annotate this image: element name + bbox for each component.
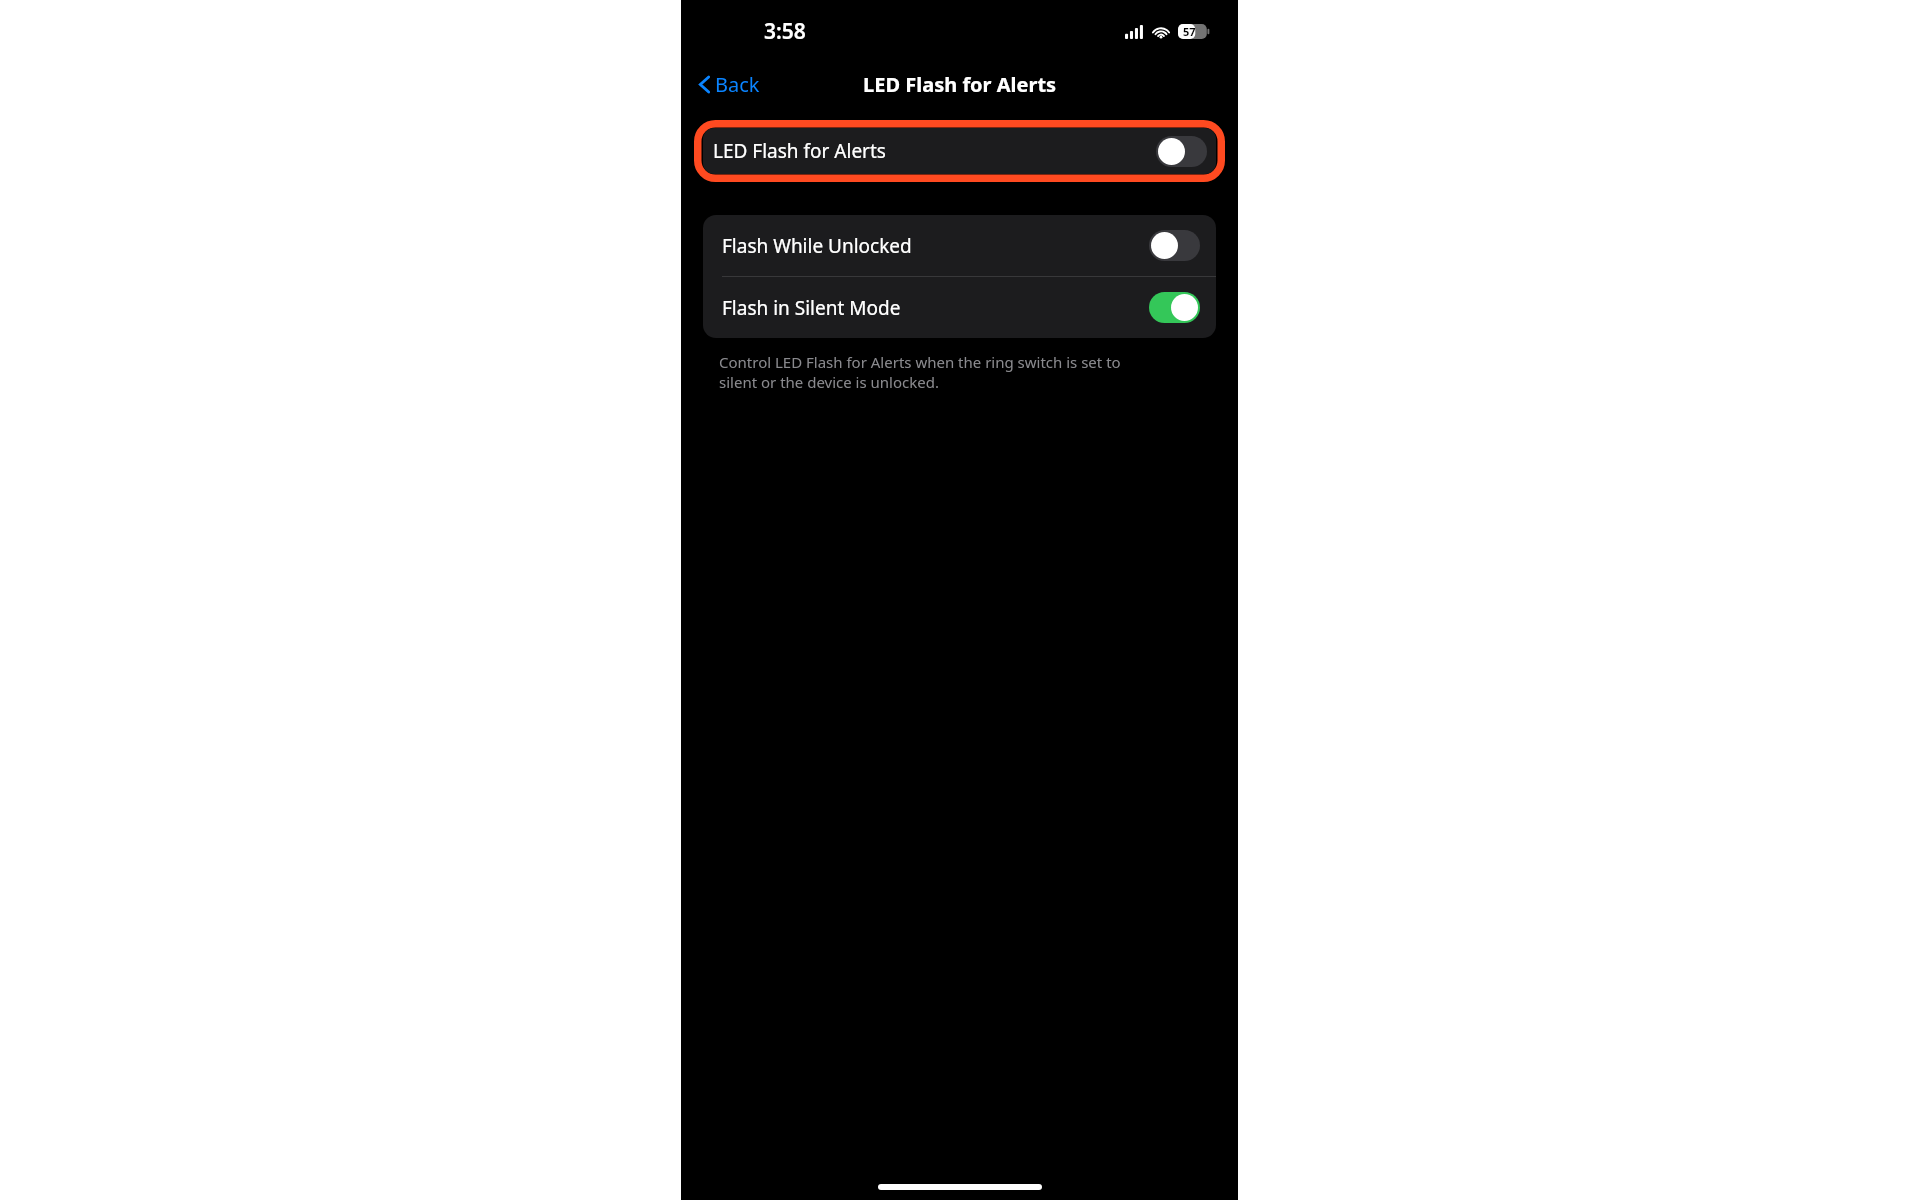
button[interactable]: On: [1149, 292, 1200, 323]
staticText: Flash While Unlocked: [722, 233, 912, 259]
button[interactable]: Flash While Unlocked: [703, 215, 1216, 276]
staticText: LED Flash for Alerts: [863, 71, 1057, 98]
button[interactable]: Back: [693, 67, 766, 102]
staticText: 57: [1183, 24, 1196, 39]
staticText: Control LED Flash for Alerts when the ri…: [719, 352, 1121, 372]
staticText: LED Flash for Alerts: [713, 138, 886, 164]
staticText: Back: [715, 71, 760, 98]
button[interactable]: Off: [1149, 230, 1200, 261]
button[interactable]: Flash in Silent Mode: [703, 277, 1216, 338]
staticText: silent or the device is unlocked.: [719, 372, 939, 392]
button[interactable]: Off: [1156, 136, 1207, 167]
staticText: 3:58: [764, 17, 806, 46]
button[interactable]: LED Flash for Alerts: [703, 128, 1216, 174]
staticText: Flash in Silent Mode: [722, 295, 901, 321]
